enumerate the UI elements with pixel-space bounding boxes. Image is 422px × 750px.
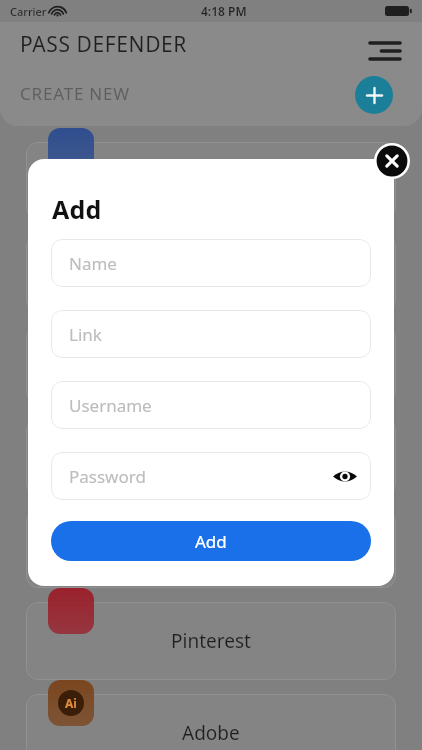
staticText: Reddit <box>182 536 240 562</box>
staticText: LinkedIn <box>172 444 250 470</box>
staticText: Password <box>69 465 146 488</box>
button[interactable]: Password <box>51 452 371 500</box>
button[interactable]: Adobe <box>26 694 396 750</box>
button[interactable]: Menu <box>362 28 408 74</box>
button[interactable]: Link <box>51 310 371 358</box>
button[interactable]: Add <box>51 521 371 561</box>
button[interactable]: Show password <box>329 460 361 492</box>
button[interactable]: Add new <box>355 76 393 114</box>
staticText: CREATE NEW <box>20 82 130 105</box>
staticText: Username <box>69 394 152 417</box>
staticText: Pinterest <box>171 628 251 654</box>
staticText: Adobe <box>182 720 240 746</box>
button[interactable]: Twitter <box>26 234 396 312</box>
staticText: 4:18 PM <box>201 3 247 19</box>
staticText: Add <box>52 192 102 226</box>
button[interactable]: Username <box>51 381 371 429</box>
button[interactable]: Name <box>51 239 371 287</box>
staticText: Add <box>195 530 227 553</box>
button[interactable]: Pinterest <box>26 602 396 680</box>
button[interactable]: Close <box>374 143 410 179</box>
staticText: Name <box>69 252 117 275</box>
staticText: Ai <box>65 695 77 711</box>
staticText: Carrier <box>10 4 47 19</box>
staticText: Instagram <box>165 352 258 378</box>
button[interactable]: LinkedIn <box>26 418 396 496</box>
staticText: PASS DEFENDER <box>20 30 188 59</box>
button[interactable]: Reddit <box>26 510 396 588</box>
button[interactable]: Facebook <box>26 142 396 220</box>
staticText: Link <box>69 323 102 346</box>
button[interactable]: Instagram <box>26 326 396 404</box>
